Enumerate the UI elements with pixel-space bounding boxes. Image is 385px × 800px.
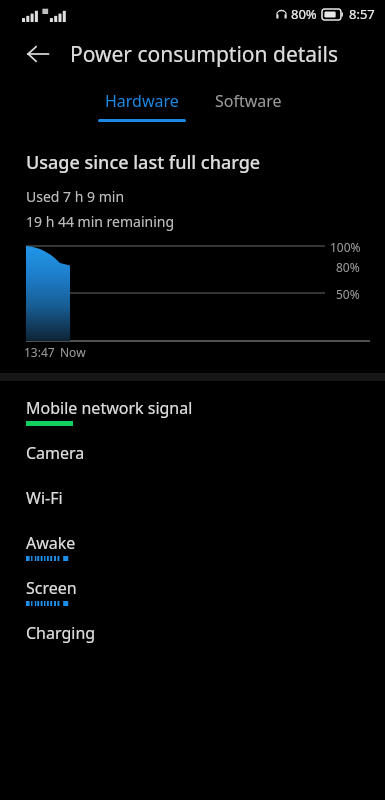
staticText: 80% — [291, 5, 317, 23]
staticText: Now — [60, 344, 86, 360]
staticText: 80% — [336, 259, 360, 275]
staticText: Screen — [26, 577, 77, 599]
staticText: Charging — [26, 622, 96, 644]
button[interactable]: Charging — [0, 616, 385, 661]
staticText: Mobile network signal — [26, 397, 193, 419]
staticText: 19 h 44 min remaining — [26, 212, 175, 231]
staticText: Hardware — [105, 90, 179, 112]
button[interactable]: Software — [208, 83, 288, 129]
staticText: 100% — [330, 239, 361, 255]
button[interactable]: Screen — [0, 571, 385, 616]
staticText: Usage since last full charge — [26, 150, 261, 175]
staticText: 50% — [336, 286, 360, 302]
staticText: Camera — [26, 442, 85, 464]
staticText: 13:47 — [24, 344, 55, 360]
staticText: Wi-Fi — [26, 487, 63, 509]
button[interactable]: Camera — [0, 436, 385, 481]
staticText: Used 7 h 9 min — [26, 187, 125, 206]
staticText: 8:57 — [349, 5, 375, 23]
button[interactable]: Awake — [0, 526, 385, 571]
button[interactable]: Mobile network signal — [0, 391, 385, 436]
staticText: Software — [215, 90, 282, 112]
staticText: Power consumption details — [70, 40, 338, 69]
staticText: Awake — [26, 532, 76, 554]
button[interactable]: Hardware — [98, 83, 186, 129]
button[interactable]: Back — [16, 32, 60, 76]
button[interactable]: Wi-Fi — [0, 481, 385, 526]
